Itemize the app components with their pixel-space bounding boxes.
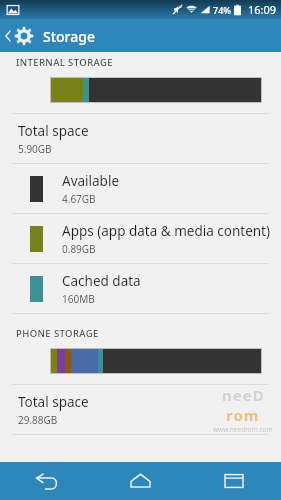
button[interactable]: Navigate up: [0, 26, 103, 46]
button[interactable]: Recent apps: [187, 462, 281, 500]
staticText: 74%: [213, 4, 231, 16]
staticText: PHONE STORAGE: [16, 327, 99, 340]
staticText: rom: [226, 405, 260, 425]
button[interactable]: Home: [93, 462, 187, 500]
staticText: Storage: [43, 27, 95, 46]
button[interactable]: Available: [0, 164, 281, 213]
staticText: Cached data: [62, 272, 141, 290]
staticText: Total space: [18, 122, 89, 140]
staticText: Available: [62, 172, 119, 190]
staticText: 16:09: [248, 2, 277, 17]
staticText: Apps (app data & media content): [62, 222, 271, 240]
button[interactable]: Cached data: [0, 264, 281, 313]
button[interactable]: Back: [0, 462, 93, 500]
staticText: Total space: [18, 393, 89, 411]
staticText: 4.67GB: [62, 192, 96, 206]
button[interactable]: Total space: [0, 385, 281, 434]
staticText: 29.88GB: [18, 413, 58, 427]
button[interactable]: Total space: [0, 114, 281, 163]
button[interactable]: Apps (app data & media content): [0, 214, 281, 263]
staticText: 0.89GB: [62, 242, 96, 256]
staticText: neeD: [222, 385, 265, 405]
staticText: 5.90GB: [18, 142, 52, 156]
staticText: INTERNAL STORAGE: [16, 56, 113, 69]
staticText: 160MB: [62, 292, 95, 306]
staticText: www.needrom.com: [213, 425, 273, 434]
